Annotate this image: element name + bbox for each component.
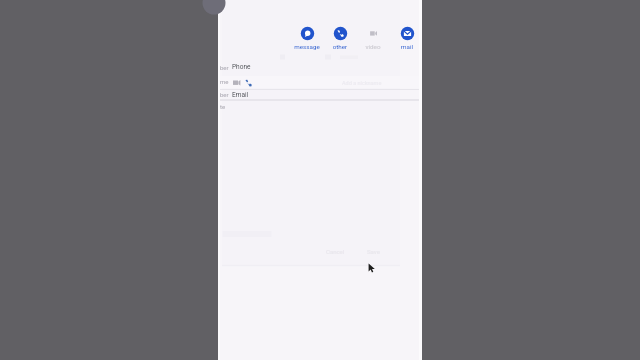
staticText: mail — [390, 43, 424, 50]
staticText: Save — [367, 248, 380, 255]
staticText: te — [220, 103, 226, 110]
button[interactable]: video — [356, 26, 390, 50]
button[interactable]: other — [323, 26, 357, 50]
button[interactable]: Cancel — [321, 247, 350, 255]
button[interactable]: Save — [361, 247, 385, 255]
staticText: other — [323, 43, 357, 50]
button[interactable] — [218, 89, 421, 100]
staticText: ber — [220, 91, 229, 98]
staticText: message — [290, 43, 324, 50]
staticText: video — [356, 43, 390, 50]
staticText: Email — [232, 91, 249, 99]
staticText: me — [220, 78, 229, 85]
staticText: ber — [220, 64, 229, 71]
button[interactable] — [218, 76, 421, 88]
button[interactable]: message — [290, 26, 324, 50]
button[interactable] — [218, 60, 421, 75]
staticText: Cancel — [326, 248, 345, 255]
staticText: Add a nickname — [342, 80, 382, 86]
staticText: Phone — [232, 63, 251, 71]
button[interactable]: mail — [390, 26, 424, 50]
